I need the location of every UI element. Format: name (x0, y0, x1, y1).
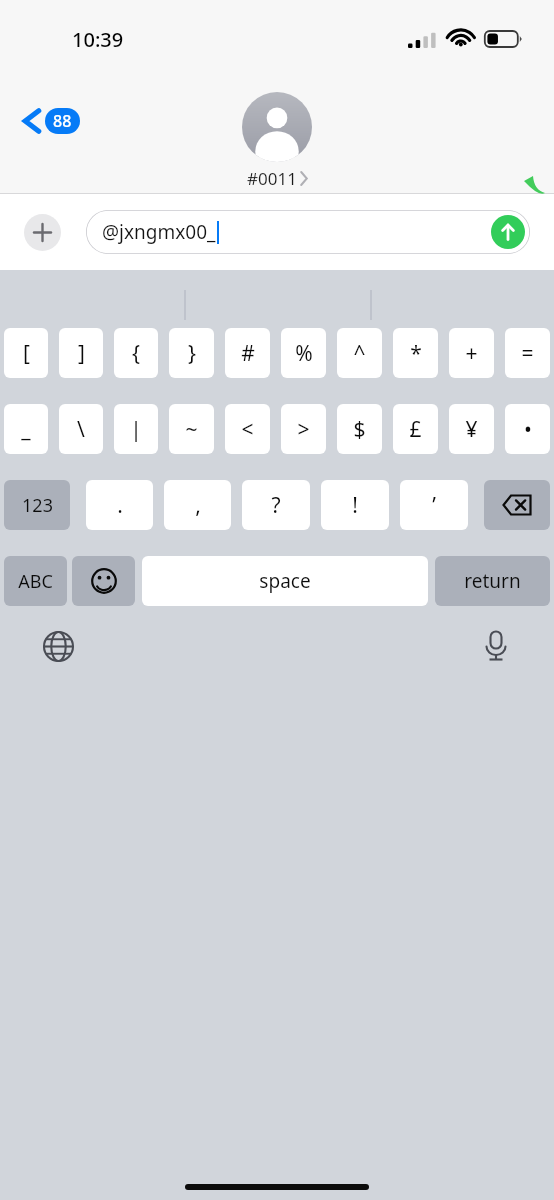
staticText: { (132, 339, 140, 368)
staticText: = (521, 339, 534, 368)
button[interactable]: $ (337, 404, 382, 454)
staticText: £ (409, 415, 422, 444)
button[interactable]: } (169, 328, 214, 378)
button[interactable]: 123 (4, 480, 70, 530)
button[interactable]: + (449, 328, 494, 378)
staticText: ^ (353, 339, 366, 368)
staticText: ¥ (465, 415, 478, 444)
button[interactable]: ] (59, 328, 103, 378)
button[interactable]: ¥ (449, 404, 494, 454)
button[interactable]: | (114, 404, 158, 454)
button[interactable]: Send (491, 215, 525, 249)
button[interactable]: • (505, 404, 550, 454)
button[interactable]: #0011 (242, 92, 312, 190)
staticText: 123 (22, 493, 53, 518)
button[interactable]: [ (4, 328, 48, 378)
button[interactable]: * (393, 328, 438, 378)
staticText: \ (77, 415, 85, 444)
button[interactable]: Delete (484, 480, 550, 530)
staticText: | (130, 415, 142, 444)
staticText: _ (21, 415, 31, 444)
button[interactable]: Back, 88 unread (20, 100, 80, 142)
button[interactable]: ’ (400, 480, 468, 530)
staticText: • (524, 415, 532, 444)
button[interactable]: _ (4, 404, 48, 454)
button[interactable]: . (86, 480, 153, 530)
button[interactable]: ~ (169, 404, 214, 454)
staticText: space (259, 568, 311, 594)
button[interactable]: @jxngmx00_ (86, 210, 530, 254)
button[interactable]: Change keyboard (38, 626, 78, 666)
button[interactable]: , (164, 480, 231, 530)
button[interactable]: Dictation (476, 626, 516, 666)
button[interactable]: space (142, 556, 428, 606)
staticText: 88 (53, 110, 72, 132)
button[interactable]: < (225, 404, 270, 454)
staticText: ABC (18, 569, 53, 594)
button[interactable]: > (281, 404, 326, 454)
staticText: % (295, 339, 313, 368)
button[interactable]: { (114, 328, 158, 378)
staticText: # (241, 339, 255, 368)
button[interactable]: £ (393, 404, 438, 454)
staticText: @jxngmx00_ (102, 219, 216, 245)
staticText: ’ (432, 491, 436, 520)
staticText: ? (271, 491, 281, 520)
button[interactable]: ? (242, 480, 310, 530)
staticText: return (464, 568, 521, 594)
staticText: + (465, 339, 478, 368)
staticText: #0011 (247, 167, 297, 190)
button[interactable]: % (281, 328, 326, 378)
staticText: > (297, 415, 310, 444)
button[interactable]: \ (59, 404, 103, 454)
staticText: ! (352, 491, 358, 520)
staticText: [ (23, 339, 30, 368)
staticText: * (410, 339, 422, 368)
button[interactable]: ABC (4, 556, 67, 606)
staticText: . (117, 491, 123, 520)
button[interactable]: = (505, 328, 550, 378)
staticText: ~ (185, 415, 198, 444)
staticText: $ (353, 415, 366, 444)
button[interactable]: return (435, 556, 550, 606)
staticText: < (241, 415, 254, 444)
button[interactable]: ! (321, 480, 389, 530)
staticText: , (195, 491, 201, 520)
button[interactable]: # (225, 328, 270, 378)
button[interactable]: Add attachment (24, 214, 61, 251)
staticText: 10:39 (72, 26, 124, 53)
button[interactable]: Emoji (72, 556, 135, 606)
staticText: } (188, 339, 196, 368)
staticText: ] (78, 339, 85, 368)
button[interactable]: ^ (337, 328, 382, 378)
